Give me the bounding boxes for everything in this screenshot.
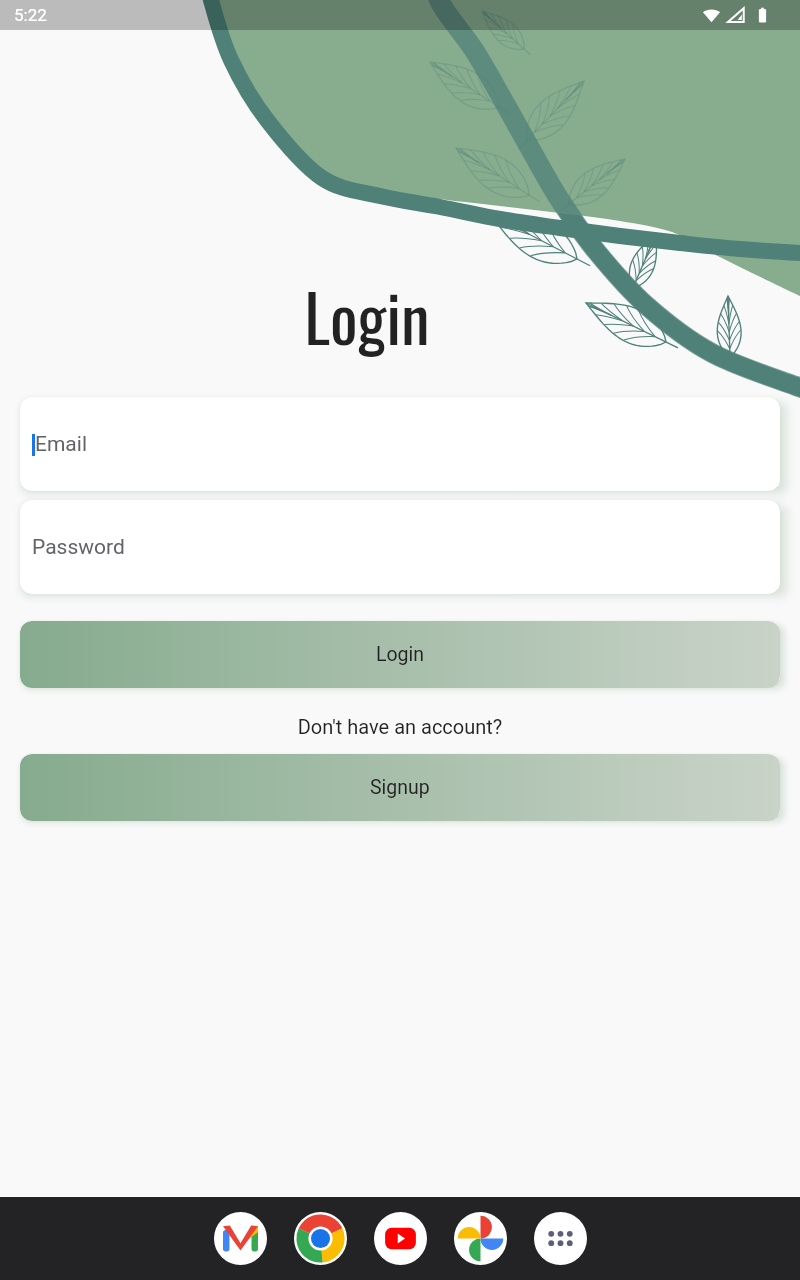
button[interactable]: All apps xyxy=(534,1212,587,1265)
button[interactable]: Password xyxy=(20,500,780,594)
button[interactable]: Chrome xyxy=(294,1212,347,1265)
staticText: Signup xyxy=(370,776,430,799)
staticText: Login xyxy=(376,643,425,666)
button[interactable]: Signup xyxy=(20,754,780,821)
staticText: Password xyxy=(32,535,125,560)
staticText: Login xyxy=(0,267,734,363)
button[interactable]: Login xyxy=(20,621,780,688)
button[interactable]: YouTube xyxy=(374,1212,427,1265)
button[interactable]: Photos xyxy=(454,1212,507,1265)
button[interactable]: Gmail xyxy=(214,1212,267,1265)
button[interactable]: Email xyxy=(20,397,780,491)
staticText: Email xyxy=(35,432,87,457)
staticText: Don't have an account? xyxy=(0,715,800,738)
staticText: 5:22 xyxy=(14,5,47,25)
